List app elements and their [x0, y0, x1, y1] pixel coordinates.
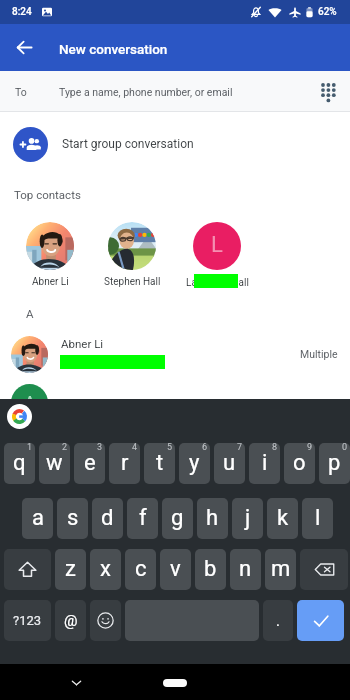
staticText: ?123	[13, 613, 42, 628]
button[interactable]: t	[144, 443, 175, 484]
button[interactable]: n	[230, 549, 261, 590]
button[interactable]: x	[90, 549, 121, 590]
staticText: m	[271, 556, 291, 582]
button[interactable]: Dialpad	[310, 74, 346, 110]
button[interactable]: Google search	[7, 404, 32, 429]
button[interactable]: w	[39, 443, 70, 484]
button[interactable]: s	[57, 498, 88, 539]
staticText: i	[262, 450, 268, 476]
staticText: 8:24	[12, 6, 32, 18]
staticText: d	[101, 505, 114, 531]
staticText: g	[171, 505, 184, 531]
staticText: p	[328, 450, 341, 476]
button[interactable]: i	[249, 443, 280, 484]
button[interactable]: e	[74, 443, 105, 484]
staticText: @	[64, 612, 78, 630]
staticText: 1	[27, 443, 33, 453]
staticText: n	[239, 556, 252, 582]
staticText: To	[15, 86, 27, 98]
staticText: v	[170, 556, 181, 582]
button[interactable]: r	[109, 443, 140, 484]
button[interactable]: Backspace	[300, 549, 348, 590]
staticText: Multiple	[300, 348, 338, 360]
button[interactable]: l	[302, 498, 333, 539]
staticText: r	[121, 450, 129, 476]
button[interactable]: Home	[163, 679, 187, 687]
staticText: f	[139, 505, 147, 531]
staticText: L	[211, 232, 223, 258]
staticText: a	[32, 505, 44, 531]
staticText: 6	[202, 443, 208, 453]
staticText: 0	[342, 443, 348, 453]
staticText: q	[13, 450, 26, 476]
staticText: b	[204, 556, 217, 582]
staticText: j	[245, 505, 251, 531]
staticText: l	[315, 505, 321, 531]
button[interactable]: .	[263, 600, 293, 641]
button[interactable]: Stephen Hall	[92, 222, 172, 288]
button[interactable]: c	[125, 549, 156, 590]
button[interactable]: ?123	[4, 600, 51, 641]
staticText: t	[156, 450, 164, 476]
staticText: Start group conversation	[62, 137, 194, 151]
button[interactable]: Abner Li	[0, 330, 350, 378]
button[interactable]: m	[265, 549, 296, 590]
staticText: s	[67, 505, 79, 531]
button[interactable]: @	[55, 600, 86, 641]
button[interactable]: Emoji	[90, 600, 121, 641]
staticText: 3	[97, 443, 103, 453]
staticText: w	[46, 450, 63, 476]
button[interactable]: k	[267, 498, 298, 539]
staticText: k	[277, 505, 289, 531]
staticText: 9	[307, 443, 313, 453]
staticText: 62%	[318, 6, 337, 18]
button[interactable]: h	[197, 498, 228, 539]
button[interactable]: Abner Li	[10, 222, 90, 288]
button[interactable]: z	[55, 549, 86, 590]
button[interactable]: u	[214, 443, 245, 484]
staticText: 8	[272, 443, 278, 453]
staticText: 5	[167, 443, 173, 453]
staticText: y	[189, 450, 200, 476]
staticText: o	[293, 450, 306, 476]
staticText: Type a name, phone number, or email	[59, 86, 233, 98]
button[interactable]: Back	[6, 24, 42, 71]
staticText: Top contacts	[14, 188, 81, 201]
staticText: e	[84, 450, 96, 476]
button[interactable]: o	[284, 443, 315, 484]
button[interactable]: b	[195, 549, 226, 590]
button[interactable]: p	[319, 443, 350, 484]
button[interactable]: f	[127, 498, 158, 539]
staticText: z	[65, 556, 76, 582]
staticText: A	[26, 307, 34, 320]
staticText: h	[206, 505, 219, 531]
staticText: 7	[237, 443, 243, 453]
button[interactable]: v	[160, 549, 191, 590]
staticText: 4	[132, 443, 138, 453]
staticText: .	[276, 612, 280, 630]
button[interactable]: q	[4, 443, 35, 484]
staticText: New conversation	[59, 41, 168, 57]
staticText: Abner Li	[61, 337, 104, 350]
staticText: Stephen Hall	[104, 276, 161, 288]
button[interactable]: j	[232, 498, 263, 539]
staticText: c	[135, 556, 147, 582]
button[interactable]: L	[177, 222, 257, 290]
button[interactable]: g	[162, 498, 193, 539]
staticText: Lawrence Hall	[186, 277, 249, 289]
button[interactable]: Hide keyboard	[61, 667, 91, 697]
button[interactable]: Shift	[4, 549, 51, 590]
button[interactable]: y	[179, 443, 210, 484]
staticText: u	[223, 450, 236, 476]
button[interactable]: Start group conversation	[0, 112, 350, 176]
staticText: 2	[62, 443, 68, 453]
button[interactable]: a	[22, 498, 53, 539]
button[interactable]: Enter	[297, 600, 344, 641]
button[interactable]: d	[92, 498, 123, 539]
staticText: Abner Li	[32, 276, 69, 288]
staticText: x	[100, 556, 111, 582]
staticText: A	[24, 392, 36, 413]
